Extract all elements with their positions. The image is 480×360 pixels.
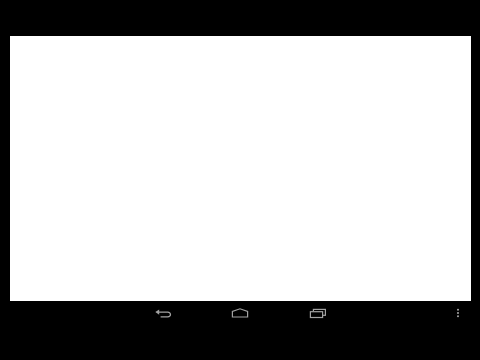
button[interactable]: Home [223, 296, 257, 330]
button[interactable]: Back [146, 296, 180, 330]
button[interactable]: Recent apps [301, 296, 335, 330]
button[interactable]: More options [441, 296, 475, 330]
